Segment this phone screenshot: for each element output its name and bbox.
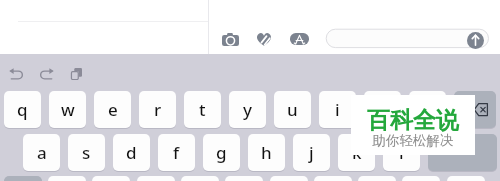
button[interactable]: a [23,134,60,171]
button[interactable]: i [319,91,356,128]
staticText: k [352,141,362,164]
staticText: 助你轻松解决 [351,132,475,150]
staticText: f [173,141,180,164]
button[interactable]: z [48,176,86,181]
button[interactable]: Send [467,32,484,49]
staticText: i [335,98,340,121]
staticText: r [154,98,162,121]
staticText: e [108,98,118,121]
button[interactable]: l [383,134,420,171]
button[interactable]: h [248,134,285,171]
button[interactable]: r [139,91,176,128]
staticText: 百科全说 [351,106,475,132]
button[interactable]: o [364,91,401,128]
button[interactable]: Undo [9,68,23,80]
staticText: u [287,98,298,121]
staticText: w [61,98,75,121]
button[interactable] [326,29,489,48]
staticText: l [399,141,404,164]
button[interactable]: s [68,134,105,171]
button[interactable]: y [229,91,266,128]
button[interactable]: , [402,176,440,181]
button[interactable]: e [94,91,131,128]
button[interactable]: Paste [71,68,82,80]
staticText: q [17,98,28,121]
button[interactable]: u [274,91,311,128]
button[interactable]: t [184,91,221,128]
staticText: o [377,98,388,121]
button[interactable]: Camera [222,33,239,46]
button[interactable]: m [314,176,352,181]
button[interactable]: q [4,91,41,128]
button[interactable]: k [338,134,375,171]
button[interactable]: j [293,134,330,171]
button[interactable]: d [113,134,150,171]
button[interactable]: g [203,134,240,171]
button[interactable]: . [447,176,485,181]
staticText: g [216,141,227,164]
staticText: s [82,141,91,164]
staticText: a [37,141,47,164]
button[interactable]: App Store [290,33,309,45]
button[interactable]: Digital Touch [256,33,272,46]
button[interactable]: v [181,176,219,181]
button[interactable]: Return [428,134,497,171]
button[interactable]: Backspace [454,91,496,128]
button[interactable]: Shift [4,176,42,181]
staticText: t [199,98,206,121]
button[interactable]: n [270,176,308,181]
button[interactable]: c [137,176,175,181]
button[interactable]: b [225,176,263,181]
staticText: y [243,98,252,121]
button[interactable]: p [409,91,446,128]
button[interactable]: f [158,134,195,171]
staticText: d [126,141,137,164]
staticText: h [261,141,272,164]
button[interactable]: Redo [40,68,54,80]
button[interactable]: w [49,91,86,128]
staticText: p [422,98,433,121]
button[interactable]: ! [358,176,396,181]
button[interactable]: x [92,176,130,181]
staticText: j [309,141,314,164]
